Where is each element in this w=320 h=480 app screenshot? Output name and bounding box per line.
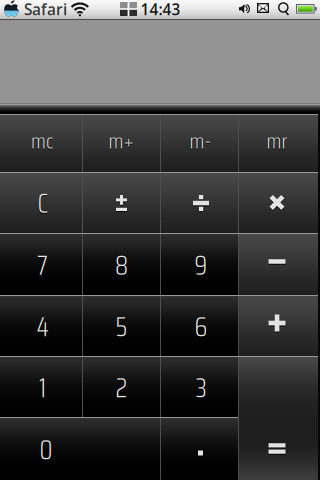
button[interactable]: memory recall — [238, 114, 318, 172]
staticText: 6 — [194, 307, 207, 349]
button[interactable]: plus — [238, 295, 318, 356]
button[interactable]: Spaces — [0, 0, 320, 19]
staticText: 0 — [39, 429, 52, 471]
staticText: 2 — [115, 368, 127, 410]
button[interactable]: 5 — [82, 295, 160, 356]
staticText: 8 — [115, 244, 128, 286]
staticText: 3 — [195, 368, 206, 410]
staticText: m- — [189, 125, 211, 159]
button[interactable]: memory clear — [0, 114, 82, 172]
button[interactable]: divide — [160, 172, 238, 233]
staticText: 1 — [39, 368, 46, 410]
button[interactable]: Wi-Fi — [0, 0, 320, 19]
button[interactable]: memory add — [82, 114, 160, 172]
button[interactable]: multiply — [238, 172, 318, 233]
button[interactable]: minus — [238, 233, 318, 295]
button[interactable]: 1 — [0, 356, 82, 417]
staticText: mr — [266, 125, 287, 159]
staticText: m+ — [108, 124, 133, 158]
staticText: C — [37, 182, 48, 224]
staticText: 9 — [194, 245, 207, 287]
staticText: 1 — [39, 367, 46, 409]
staticText: mr — [266, 124, 287, 158]
button[interactable]: decimal point — [160, 417, 238, 480]
staticText: Safari — [24, 0, 67, 20]
staticText: m- — [189, 124, 211, 158]
staticText: 14:43 — [140, 0, 180, 20]
button[interactable]: 0 — [0, 417, 160, 480]
button[interactable]: Mail — [0, 0, 320, 19]
button[interactable]: 7 — [0, 233, 82, 295]
staticText: 6 — [194, 306, 207, 348]
staticText: mc — [31, 125, 54, 159]
staticText: 2 — [115, 367, 127, 409]
button[interactable]: Apple menu — [0, 0, 320, 19]
button[interactable]: 2 — [82, 356, 160, 417]
button[interactable]: memory subtract — [160, 114, 238, 172]
button[interactable]: equals — [238, 356, 318, 480]
button[interactable]: Battery — [0, 0, 320, 19]
staticText: 3 — [195, 367, 206, 409]
button[interactable]: Safari — [0, 0, 320, 19]
staticText: 7 — [37, 244, 48, 286]
staticText: m+ — [108, 125, 133, 159]
staticText: mc — [31, 124, 54, 158]
button[interactable]: Spotlight search — [0, 0, 320, 19]
staticText: 9 — [194, 244, 207, 286]
staticText: 4 — [36, 306, 48, 348]
button[interactable]: 6 — [160, 295, 238, 356]
button[interactable]: 8 — [82, 233, 160, 295]
staticText: 0 — [39, 430, 52, 472]
button[interactable]: clear — [0, 172, 82, 233]
button[interactable]: 3 — [160, 356, 238, 417]
staticText: 5 — [115, 306, 127, 348]
staticText: 8 — [115, 245, 128, 287]
staticText: C — [37, 183, 48, 225]
button[interactable]: 4 — [0, 295, 82, 356]
staticText: 5 — [115, 307, 127, 349]
button[interactable]: Volume — [0, 0, 320, 19]
staticText: 4 — [36, 307, 48, 349]
button[interactable]: plus minus — [82, 172, 160, 233]
staticText: 7 — [37, 245, 48, 287]
button[interactable]: 9 — [160, 233, 238, 295]
